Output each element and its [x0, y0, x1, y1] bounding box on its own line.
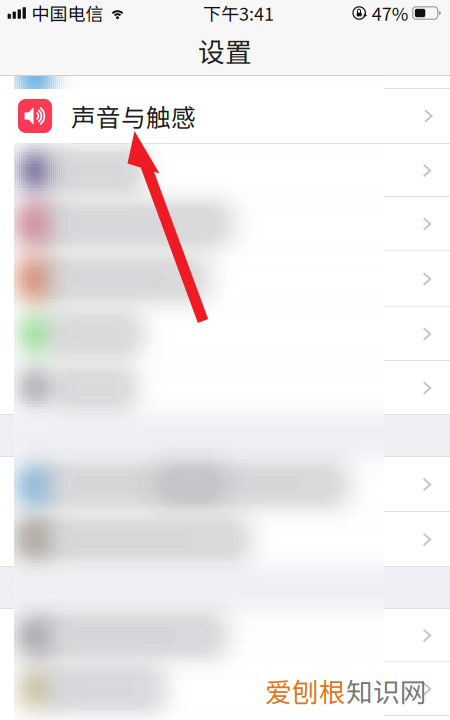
- button[interactable]: Open settings item: [404, 459, 450, 509]
- button[interactable]: Open settings item: [404, 309, 450, 359]
- button[interactable]: Open settings item: [404, 254, 450, 304]
- button[interactable]: Open settings item: [404, 363, 450, 413]
- button[interactable]: Open settings item: [404, 145, 450, 195]
- button[interactable]: Open settings item: [404, 610, 450, 660]
- staticText: 设置: [198, 31, 252, 70]
- staticText: 知识网: [346, 671, 427, 710]
- staticText: 爱刨根: [265, 671, 346, 710]
- button[interactable]: Open settings item: [404, 199, 450, 249]
- staticText: 下午3:41: [203, 0, 274, 26]
- button[interactable]: 声音与触感: [0, 89, 450, 143]
- staticText: 中国电信: [31, 0, 103, 26]
- staticText: 47%: [372, 0, 409, 26]
- button[interactable]: Open settings item: [404, 664, 450, 714]
- staticText: 声音与触感: [71, 98, 196, 134]
- button[interactable]: Open settings item: [404, 514, 450, 564]
